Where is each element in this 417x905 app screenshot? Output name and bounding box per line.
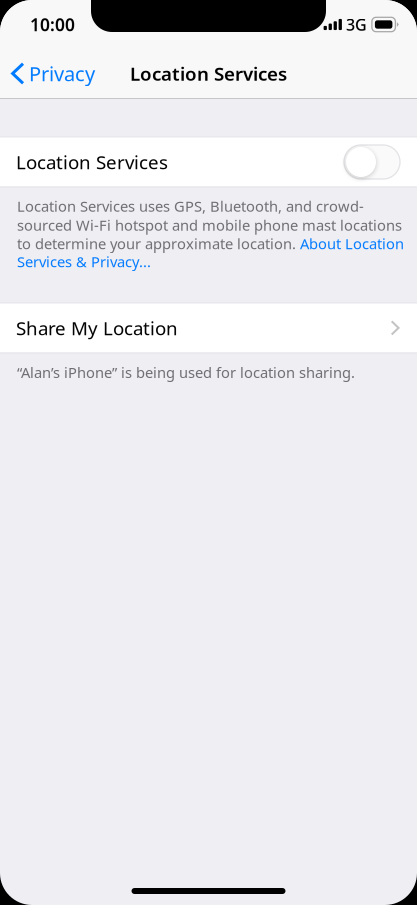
staticText: Location Services [16,150,168,174]
button[interactable]: About Location [296,234,404,253]
button[interactable]: Privacy [0,49,107,98]
staticText: to determine your approximate location. [17,234,296,253]
staticText: Share My Location [16,316,178,340]
staticText: Privacy [29,60,95,87]
staticText: “Alan’s iPhone” is being used for locati… [17,362,355,382]
staticText: Location Services [130,61,287,86]
button[interactable]: Services & Privacy... [17,252,151,270]
button[interactable]: Location Services [344,145,400,179]
staticText: 3G [346,14,367,35]
staticText: About Location [296,234,404,253]
staticText: Services & Privacy... [17,252,151,271]
staticText: Location Services uses GPS, Bluetooth, a… [17,196,364,216]
button[interactable]: Share My Location [0,303,417,352]
staticText: sourced Wi-Fi hotspot and mobile phone m… [17,215,402,235]
staticText: 10:00 [30,13,75,36]
